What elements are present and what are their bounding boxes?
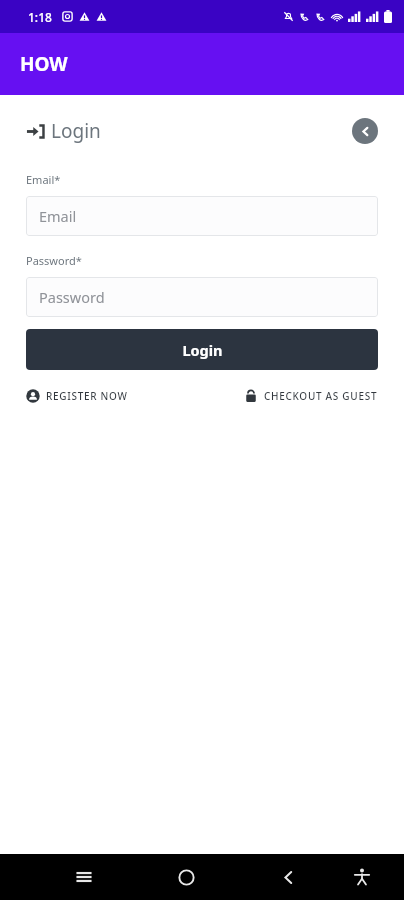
- button[interactable]: Back: [268, 857, 308, 897]
- button[interactable]: CHECKOUT AS GUEST: [244, 389, 378, 403]
- staticText: Login: [182, 340, 223, 360]
- button[interactable]: Password: [26, 277, 378, 317]
- staticText: REGISTER NOW: [46, 389, 128, 403]
- staticText: HOW: [20, 51, 68, 77]
- staticText: Password: [39, 287, 105, 307]
- staticText: Email*: [26, 172, 61, 187]
- staticText: Login: [51, 118, 101, 144]
- staticText: 1:18: [28, 9, 52, 25]
- button[interactable]: REGISTER NOW: [26, 389, 128, 403]
- button[interactable]: Login: [26, 329, 378, 370]
- button[interactable]: Back: [352, 118, 378, 144]
- staticText: CHECKOUT AS GUEST: [264, 389, 378, 403]
- button[interactable]: HOW: [0, 33, 404, 95]
- button[interactable]: Recent apps: [64, 857, 104, 897]
- button[interactable]: Home: [166, 857, 206, 897]
- button[interactable]: Email: [26, 196, 378, 236]
- staticText: Password*: [26, 253, 82, 268]
- button[interactable]: Accessibility: [342, 857, 382, 897]
- staticText: Email: [39, 206, 77, 226]
